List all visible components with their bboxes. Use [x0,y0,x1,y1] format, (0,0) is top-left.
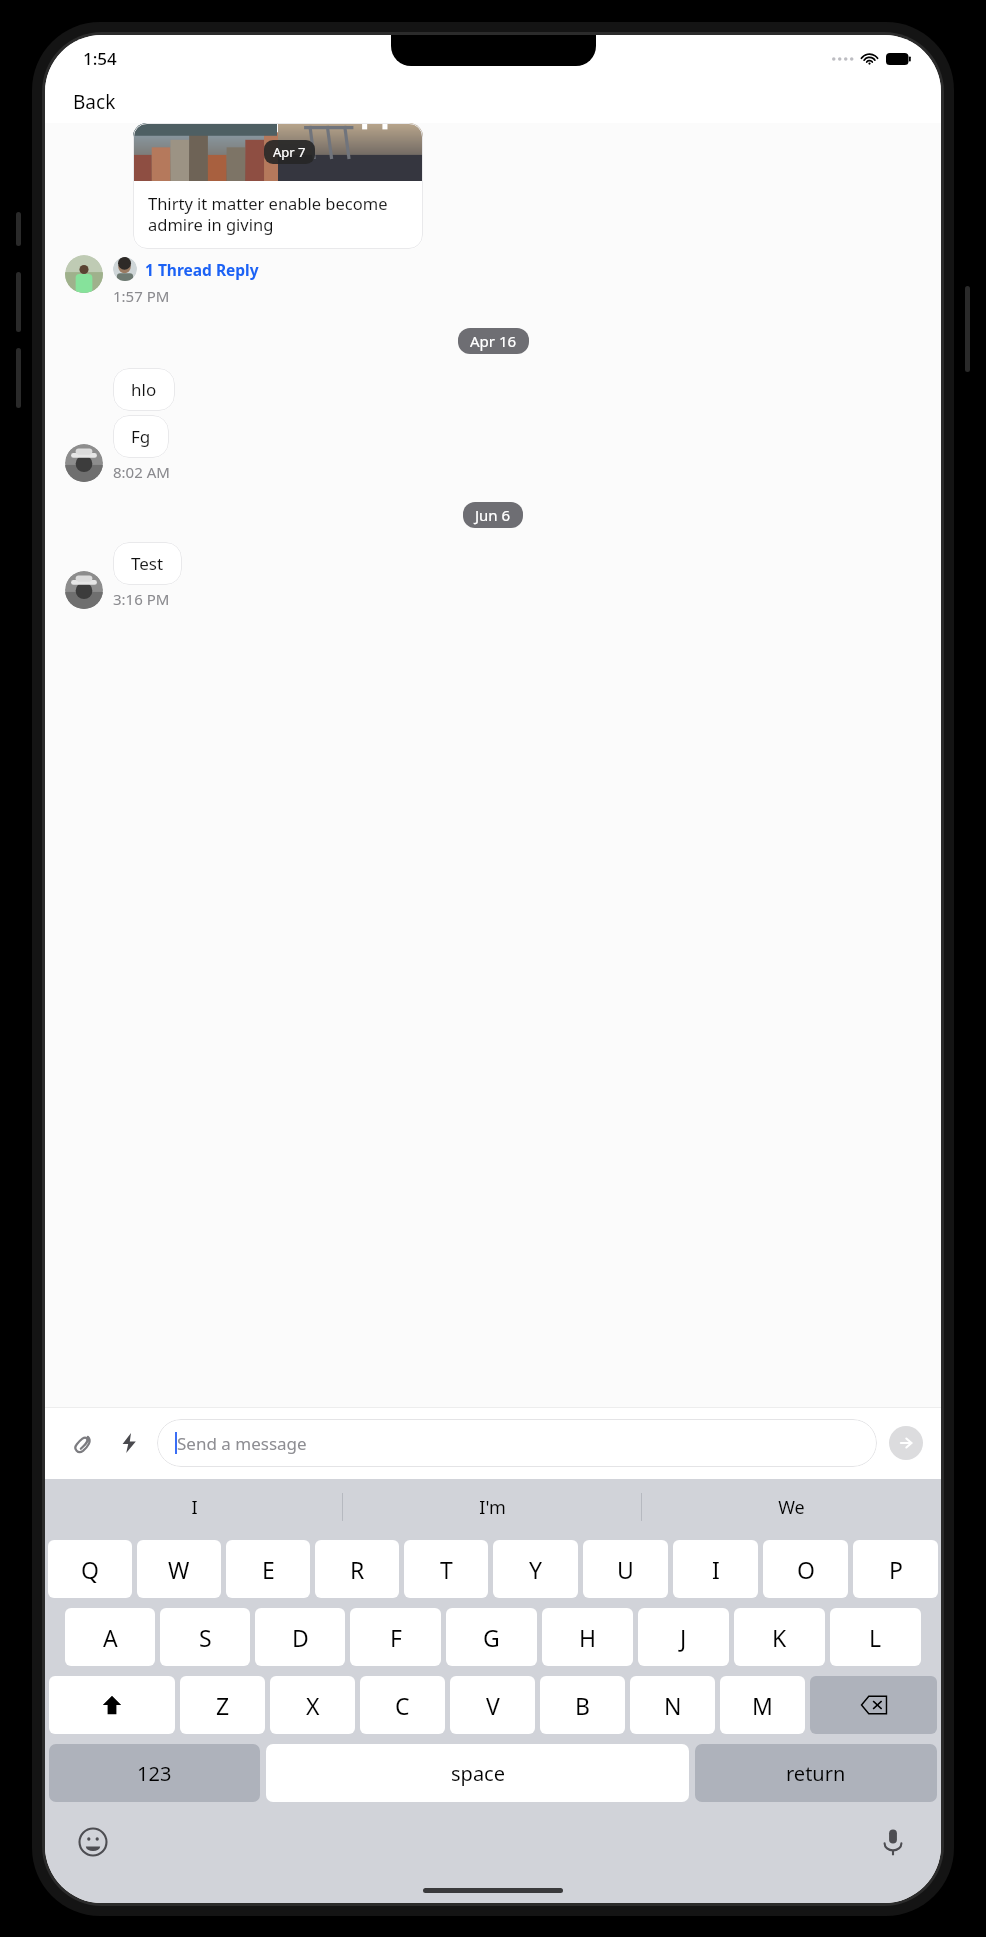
staticText: I [191,1495,198,1520]
button[interactable]: Quick actions [109,1423,149,1463]
staticText: I [712,1554,720,1585]
staticText: F [390,1622,402,1653]
staticText: Apr 7 [273,143,306,161]
button[interactable]: C [360,1676,445,1734]
button[interactable]: V [450,1676,535,1734]
button[interactable]: B [540,1676,625,1734]
button[interactable]: Fg [113,415,169,458]
staticText: V [486,1690,500,1721]
staticText: I'm [479,1495,506,1520]
staticText: N [664,1690,682,1721]
button[interactable]: Back [69,85,120,119]
staticText: A [103,1622,118,1653]
button[interactable]: Send [889,1426,923,1460]
button[interactable]: X [270,1676,355,1734]
staticText: H [579,1622,597,1653]
staticText: 1:54 [83,47,117,70]
button[interactable]: Attach file [63,1423,103,1463]
staticText: R [350,1554,365,1585]
button[interactable]: Q [48,1540,132,1598]
staticText: 1:57 PM [113,286,170,306]
staticText: Test [131,552,164,575]
staticText: 3:16 PM [113,589,170,609]
button[interactable]: J [638,1608,729,1666]
button[interactable]: D [255,1608,345,1666]
button[interactable]: E [226,1540,310,1598]
button[interactable]: I'm [343,1479,642,1535]
button[interactable]: U [583,1540,668,1598]
button[interactable]: L [830,1608,921,1666]
staticText: Q [81,1554,99,1585]
staticText: Send a message [177,1432,307,1455]
button[interactable]: T [404,1540,488,1598]
staticText: 123 [137,1760,172,1787]
staticText: O [797,1554,815,1585]
button[interactable]: W [137,1540,221,1598]
button[interactable]: I [45,1479,343,1535]
button[interactable]: return [695,1744,937,1802]
staticText: 1 Thread Reply [145,259,259,280]
staticText: L [869,1622,882,1653]
button[interactable]: 123 [49,1744,260,1802]
staticText: space [451,1760,505,1787]
button[interactable]: G [446,1608,537,1666]
staticText: T [440,1554,453,1585]
button[interactable]: A [65,1608,155,1666]
button[interactable]: F [350,1608,441,1666]
staticText: W [168,1554,190,1585]
staticText: U [617,1554,634,1585]
staticText: Z [216,1690,230,1721]
staticText: We [778,1495,805,1520]
staticText: Fg [131,425,151,448]
button[interactable]: N [630,1676,715,1734]
staticText: X [306,1690,320,1721]
button[interactable]: H [542,1608,633,1666]
staticText: Back [73,89,116,115]
button[interactable]: Test [113,542,182,585]
button[interactable]: K [734,1608,825,1666]
button[interactable]: S [160,1608,250,1666]
button[interactable] [810,1676,937,1734]
staticText: K [772,1622,787,1653]
staticText: Y [529,1554,543,1585]
staticText: D [292,1622,309,1653]
button[interactable]: Y [493,1540,578,1598]
staticText: Thirty it matter enable become admire in… [148,192,411,236]
staticText: G [483,1622,500,1653]
staticText: Jun 6 [475,505,511,525]
staticText: J [680,1622,687,1653]
staticText: Apr 16 [470,331,517,351]
staticText: C [395,1690,410,1721]
button[interactable]: R [315,1540,399,1598]
button[interactable] [49,1676,175,1734]
button[interactable]: O [763,1540,848,1598]
button[interactable]: 1 Thread Reply [113,255,259,283]
button[interactable]: space [266,1744,689,1802]
staticText: M [752,1690,773,1721]
staticText: 8:02 AM [113,462,170,482]
button[interactable]: hlo [113,368,175,411]
button[interactable]: Emoji [71,1820,115,1864]
button[interactable]: I [673,1540,758,1598]
button[interactable]: Z [180,1676,265,1734]
button[interactable]: Dictation [871,1820,915,1864]
staticText: B [575,1690,590,1721]
button[interactable]: Send a message [157,1419,877,1467]
staticText: S [199,1622,212,1653]
staticText: hlo [131,378,157,401]
staticText: E [262,1554,275,1585]
button[interactable]: P [853,1540,938,1598]
button[interactable]: We [642,1479,941,1535]
staticText: return [786,1760,846,1787]
button[interactable]: M [720,1676,805,1734]
staticText: P [889,1554,903,1585]
